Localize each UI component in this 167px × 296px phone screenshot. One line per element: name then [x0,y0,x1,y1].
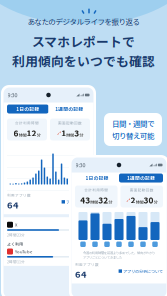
staticText: X [15,222,17,228]
staticText: 合計利用時間 [15,120,39,125]
button[interactable]: YouTube [7,247,90,266]
button[interactable]: アプリの分析 [62,199,90,205]
staticText: 日間・週間で [112,118,154,129]
staticText: 1日の記録 [85,174,108,181]
staticText: 2時間30分 [130,194,157,206]
button[interactable]: 1日の記録 [75,173,119,182]
staticText: よく利用 [7,241,23,247]
staticText: 9:30 [7,91,17,99]
staticText: 利用アプリ数 [75,262,99,267]
staticText: 9:30 [75,161,85,169]
staticText: スマホレポートで [32,32,135,50]
button[interactable]: 1日の記録 [7,104,48,113]
staticText: 64 [7,198,19,211]
staticText: 1時間3分 [61,127,83,139]
staticText: 43時間32分 [80,194,112,206]
button[interactable]: 1週間の記録 [48,104,90,113]
staticText: 6時間12分 [13,127,40,139]
staticText: 1週間の記録 [127,174,155,181]
button[interactable]: X [7,220,90,239]
staticText: 切り替え可能 [112,130,154,141]
staticText: 利用アプリ数 [7,192,31,198]
staticText: 画面起動回数 [58,120,82,125]
staticText: 2時間23分 [7,232,25,237]
staticText: 今週の利用時間を前週より多めでした。傾向がわかり アプリごとについてきました [83,250,155,260]
button[interactable]: アプリの分析について [119,268,163,274]
staticText: 1日の記録 [16,105,39,112]
staticText: 合計利用時間 [84,187,108,192]
staticText: 利用傾向をいつでも確認 [12,51,155,70]
staticText: アプリの分析 [66,199,90,205]
staticText: あなたのデジタルライフを振り返る [27,16,139,27]
button[interactable]: 1週間の記録 [119,173,163,182]
staticText: 画面起動回数 [130,187,154,192]
staticText: 64 [75,267,87,280]
staticText: 2時間11分 [7,259,25,264]
staticText: YouTube [15,248,32,254]
staticText: 1週間の記録 [55,105,83,112]
staticText: アプリの分析について [123,268,163,274]
